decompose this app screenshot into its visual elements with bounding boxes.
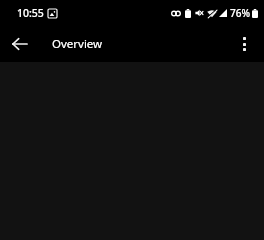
staticText: 76% [230, 6, 250, 20]
button[interactable]: Navigate up [4, 28, 36, 60]
staticText: Overview [52, 36, 103, 52]
button[interactable]: More options [228, 28, 260, 60]
staticText: 10:55 [17, 6, 44, 20]
